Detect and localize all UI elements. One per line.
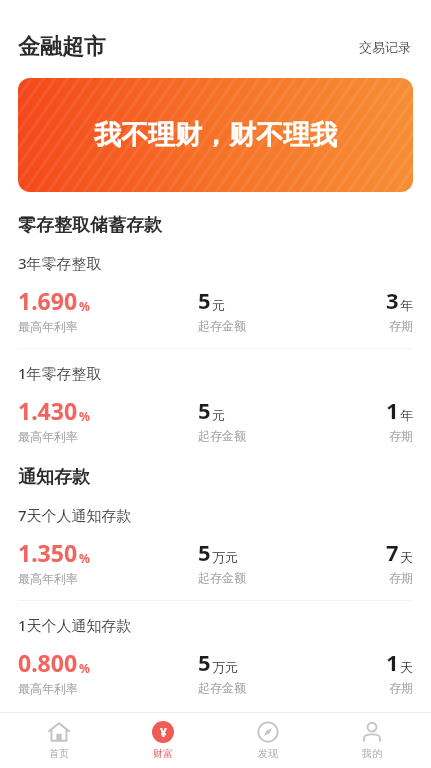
staticText: 1 bbox=[386, 647, 399, 677]
staticText: 1.690 bbox=[18, 285, 78, 316]
button[interactable]: 交易记录 bbox=[357, 35, 413, 59]
button[interactable]: 1天个人通知存款 bbox=[0, 615, 431, 696]
staticText: % bbox=[79, 408, 90, 424]
staticText: 7天个人通知存款 bbox=[18, 505, 132, 525]
staticText: 7 bbox=[386, 537, 399, 567]
staticText: 我不理财，财不理我 bbox=[94, 118, 337, 152]
button[interactable]: 财富 bbox=[118, 721, 208, 760]
staticText: 3年零存整取 bbox=[18, 253, 102, 273]
staticText: 存期 bbox=[389, 428, 413, 443]
staticText: 起存金额 bbox=[198, 680, 246, 695]
staticText: 元 bbox=[212, 297, 225, 313]
staticText: 5 bbox=[198, 647, 211, 677]
button[interactable]: 发现 bbox=[223, 721, 313, 760]
staticText: % bbox=[79, 550, 90, 566]
staticText: 起存金额 bbox=[198, 570, 246, 585]
staticText: 年 bbox=[400, 407, 413, 423]
staticText: 万元 bbox=[212, 549, 238, 565]
staticText: 最高年利率 bbox=[18, 681, 78, 696]
staticText: 起存金额 bbox=[198, 318, 246, 333]
staticText: % bbox=[79, 298, 90, 314]
staticText: 年 bbox=[400, 297, 413, 313]
staticText: 存期 bbox=[389, 680, 413, 695]
staticText: 财富 bbox=[153, 747, 173, 760]
staticText: 最高年利率 bbox=[18, 319, 78, 334]
staticText: 1.430 bbox=[18, 395, 78, 426]
staticText: 起存金额 bbox=[198, 428, 246, 443]
staticText: 5 bbox=[198, 285, 211, 315]
staticText: ¥ bbox=[160, 724, 167, 740]
staticText: 1 bbox=[386, 395, 399, 425]
button[interactable]: 7天个人通知存款 bbox=[0, 505, 431, 586]
staticText: 最高年利率 bbox=[18, 429, 78, 444]
staticText: % bbox=[79, 660, 90, 676]
staticText: 存期 bbox=[389, 570, 413, 585]
staticText: 5 bbox=[198, 395, 211, 425]
staticText: 发现 bbox=[258, 747, 278, 760]
staticText: 通知存款 bbox=[18, 466, 90, 489]
button[interactable]: 1年零存整取 bbox=[0, 363, 431, 444]
staticText: 首页 bbox=[49, 747, 69, 760]
staticText: 1天个人通知存款 bbox=[18, 615, 132, 635]
staticText: 天 bbox=[400, 659, 413, 675]
staticText: 零存整取储蓄存款 bbox=[18, 214, 162, 237]
staticText: 我的 bbox=[362, 747, 382, 760]
staticText: 元 bbox=[212, 407, 225, 423]
staticText: 0.800 bbox=[18, 647, 78, 678]
staticText: 天 bbox=[400, 549, 413, 565]
button[interactable]: 我不理财，财不理我 bbox=[18, 78, 413, 192]
staticText: 万元 bbox=[212, 659, 238, 675]
staticText: 交易记录 bbox=[359, 39, 411, 55]
staticText: 存期 bbox=[389, 318, 413, 333]
staticText: 1年零存整取 bbox=[18, 363, 102, 383]
button[interactable]: 我的 bbox=[327, 721, 417, 760]
staticText: 最高年利率 bbox=[18, 571, 78, 586]
staticText: 1.350 bbox=[18, 537, 78, 568]
staticText: 3 bbox=[386, 285, 399, 315]
button[interactable]: 首页 bbox=[14, 721, 104, 760]
button[interactable]: 3年零存整取 bbox=[0, 253, 431, 334]
staticText: 5 bbox=[198, 537, 211, 567]
staticText: 金融超市 bbox=[18, 33, 106, 61]
